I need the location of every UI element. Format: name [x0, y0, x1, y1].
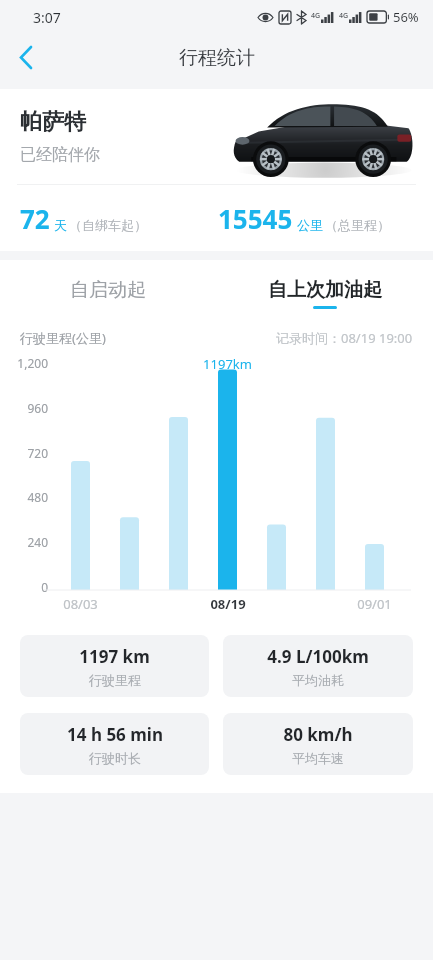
staticText: 09/01: [357, 595, 392, 613]
staticText: 0: [41, 579, 48, 595]
staticText: 已经陪伴你: [20, 145, 100, 165]
staticText: 4G: [339, 11, 349, 21]
staticText: 08/19: [210, 595, 246, 613]
staticText: 08/03: [63, 595, 98, 613]
staticText: 记录时间：08/19 19:00: [276, 329, 413, 347]
button[interactable]: 14 h 56 min: [20, 713, 209, 775]
button[interactable]: 4.9 L/100km: [223, 635, 413, 697]
staticText: 行驶时长: [89, 750, 141, 766]
staticText: 4G: [311, 11, 321, 21]
button[interactable]: 80 km/h: [223, 713, 413, 775]
staticText: 行程统计: [179, 46, 255, 70]
staticText: 720: [27, 445, 48, 461]
staticText: 帕萨特: [20, 108, 86, 136]
staticText: 天: [54, 217, 67, 233]
button[interactable]: Back: [0, 34, 52, 81]
button[interactable]: 自启动起: [0, 278, 216, 302]
staticText: 1197 km: [79, 645, 150, 668]
staticText: 240: [27, 534, 48, 550]
staticText: 1,200: [17, 355, 48, 371]
staticText: 自启动起: [70, 278, 146, 302]
staticText: 72: [20, 201, 50, 236]
staticText: 公里: [297, 217, 323, 233]
staticText: 15545: [218, 201, 293, 236]
staticText: 14 h 56 min: [67, 723, 163, 746]
staticText: 1197km: [203, 355, 252, 373]
staticText: 行驶里程: [89, 672, 141, 688]
staticText: 960: [27, 400, 48, 416]
staticText: 480: [27, 489, 48, 505]
staticText: 80 km/h: [283, 723, 353, 746]
staticText: 56%: [393, 8, 419, 26]
staticText: 平均车速: [292, 750, 344, 766]
button[interactable]: 1197 km: [20, 635, 209, 697]
button[interactable]: 自上次加油起: [216, 278, 433, 309]
staticText: 3:07: [33, 8, 61, 27]
staticText: 自上次加油起: [268, 278, 382, 302]
staticText: （自绑车起）: [69, 217, 147, 233]
staticText: （总里程）: [325, 217, 390, 233]
staticText: 平均油耗: [292, 672, 344, 688]
staticText: 4.9 L/100km: [267, 645, 369, 668]
staticText: 行驶里程(公里): [20, 329, 106, 347]
